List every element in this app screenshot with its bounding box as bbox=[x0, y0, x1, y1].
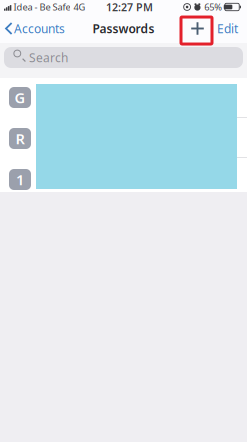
staticText: Passwords bbox=[92, 20, 154, 36]
staticText: R bbox=[15, 129, 24, 148]
button[interactable]: R bbox=[0, 118, 247, 158]
staticText: 12:27 PM bbox=[106, 0, 153, 14]
staticText: 65% bbox=[204, 1, 222, 13]
button[interactable]: Search bbox=[0, 43, 247, 78]
button[interactable]: 1 bbox=[0, 158, 247, 192]
staticText: Edit bbox=[217, 20, 238, 36]
button[interactable]: G bbox=[0, 78, 247, 118]
staticText: Accounts bbox=[14, 20, 65, 36]
staticText: Search bbox=[29, 49, 68, 65]
button[interactable]: Edit bbox=[214, 14, 241, 43]
button[interactable]: Accounts bbox=[0, 14, 70, 43]
staticText: 1 bbox=[16, 170, 24, 189]
staticText: G bbox=[14, 88, 25, 107]
staticText: Idea - Be Safe bbox=[13, 1, 70, 13]
button[interactable]: Add password bbox=[183, 16, 212, 40]
staticText: 4G bbox=[73, 1, 85, 13]
